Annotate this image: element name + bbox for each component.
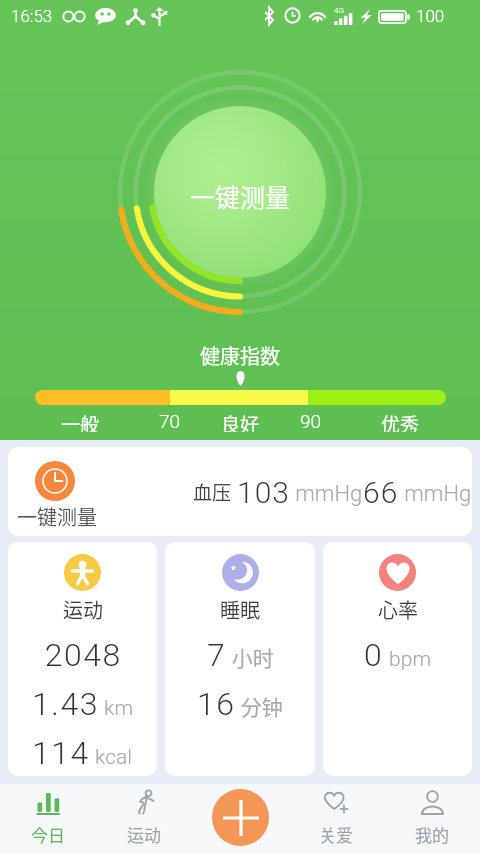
button[interactable]: 今日 [0, 784, 96, 853]
button[interactable]: 一键测量 [114, 66, 366, 318]
staticText: 血压 [193, 478, 232, 506]
staticText: 一般 [61, 410, 100, 432]
staticText: 100 [416, 6, 445, 26]
staticText: 1.43 [32, 685, 99, 723]
staticText: 一键测量 [190, 178, 291, 214]
button[interactable]: 关爱 [288, 784, 384, 853]
staticText: 103 [237, 475, 290, 510]
staticText: mmHg [290, 481, 363, 507]
staticText: kcal [90, 745, 133, 770]
staticText: 16:53 [11, 6, 53, 26]
staticText: 2048 [44, 636, 121, 674]
staticText: 运动 [63, 595, 103, 624]
staticText: 健康指数 [0, 341, 480, 370]
staticText: 今日 [31, 822, 65, 847]
button[interactable]: Add [212, 789, 269, 846]
staticText: 70 [159, 410, 181, 432]
staticText: 一键测量 [17, 502, 97, 531]
button[interactable]: 运动 [8, 542, 157, 776]
staticText: 优秀 [381, 410, 420, 432]
staticText: km [99, 696, 134, 721]
staticText: 运动 [127, 822, 161, 847]
button[interactable]: 睡眠 [165, 542, 315, 776]
staticText: 良好 [221, 410, 260, 432]
staticText: 66 [363, 475, 399, 510]
staticText: mmHg [399, 481, 472, 507]
staticText: 0 [364, 636, 384, 674]
staticText: bpm [384, 647, 432, 672]
button[interactable]: 运动 [96, 784, 192, 853]
staticText: 睡眠 [220, 595, 260, 624]
staticText: 7 [207, 636, 227, 674]
staticText: 小时 [227, 642, 274, 672]
staticText: 4G [334, 6, 344, 15]
staticText: 分钟 [236, 691, 283, 721]
staticText: 16 [197, 685, 236, 723]
button[interactable]: 一键测量 [8, 447, 472, 536]
staticText: 我的 [415, 822, 449, 847]
staticText: 114 [32, 734, 90, 772]
button[interactable]: 我的 [384, 784, 480, 853]
staticText: 关爱 [319, 822, 353, 847]
staticText: 90 [300, 410, 322, 432]
button[interactable]: 心率 [323, 542, 472, 776]
staticText: 心率 [378, 595, 418, 624]
